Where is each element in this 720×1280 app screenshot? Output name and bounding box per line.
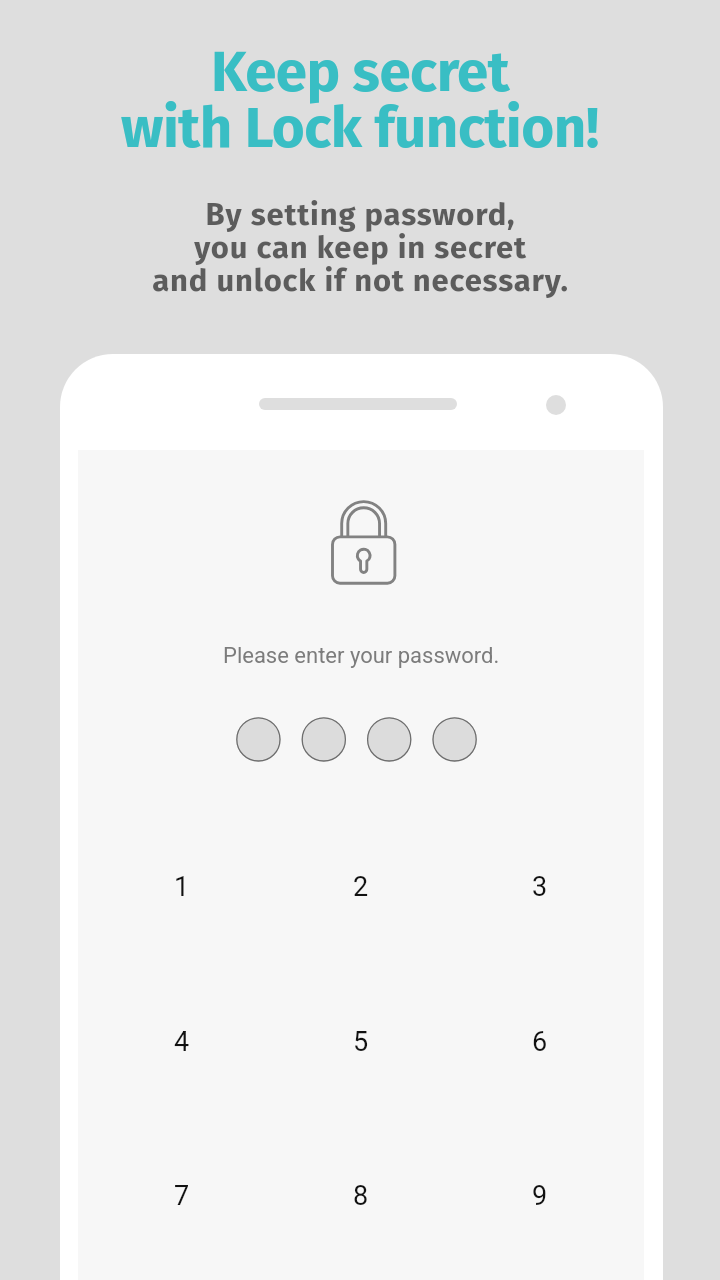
button[interactable]: 6: [451, 965, 629, 1119]
staticText: Please enter your password.: [223, 643, 500, 669]
button[interactable]: 4: [93, 965, 271, 1119]
button[interactable]: 2: [272, 810, 450, 964]
staticText: 8: [353, 1180, 369, 1212]
button[interactable]: 1: [93, 810, 271, 964]
staticText: Keep secret with Lock function!: [121, 38, 599, 162]
staticText: 9: [532, 1180, 548, 1212]
button[interactable]: 3: [451, 810, 629, 964]
staticText: By setting password, you can keep in sec…: [152, 196, 569, 299]
button[interactable]: 8: [272, 1119, 450, 1273]
staticText: 7: [174, 1180, 190, 1212]
other: Locked: [327, 494, 401, 590]
button[interactable]: 9: [451, 1119, 629, 1273]
button[interactable]: 7: [93, 1119, 271, 1273]
button[interactable]: 5: [272, 965, 450, 1119]
staticText: 1: [174, 871, 190, 903]
staticText: 4: [174, 1026, 190, 1058]
staticText: 6: [532, 1026, 548, 1058]
staticText: 3: [532, 871, 548, 903]
staticText: 5: [353, 1026, 369, 1058]
staticText: 2: [353, 871, 369, 903]
